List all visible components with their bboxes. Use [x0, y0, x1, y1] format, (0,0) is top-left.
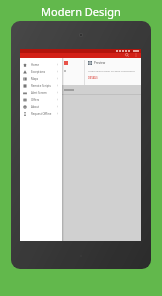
- staticText: Lorem ipsum dolor sit amet consectetur: [88, 69, 135, 72]
- button[interactable]: Maps: [20, 75, 62, 82]
- button[interactable]: Exceptions: [20, 68, 62, 75]
- staticText: Remote Scripts: [31, 84, 51, 88]
- button[interactable]: Remote Scripts: [20, 82, 62, 89]
- button[interactable]: Alert Screen: [20, 89, 62, 96]
- button[interactable]: About: [20, 103, 62, 110]
- staticText: Modern Design: [41, 4, 121, 19]
- staticText: Exceptions: [31, 70, 46, 74]
- staticText: Maps: [31, 77, 39, 81]
- staticText: DETAILS: [88, 76, 98, 79]
- button[interactable]: More options: [133, 52, 138, 57]
- staticText: Preview: [94, 61, 106, 65]
- staticText: Alert Screen: [31, 91, 47, 95]
- staticText: Offers: [31, 98, 40, 102]
- staticText: Request Offline: [31, 112, 52, 116]
- button[interactable]: DETAILS: [88, 76, 98, 79]
- staticText: Home: [31, 63, 39, 67]
- button[interactable]: Request Offline: [20, 110, 62, 117]
- button[interactable]: Search: [124, 52, 129, 57]
- button[interactable]: Offers: [20, 96, 62, 103]
- button[interactable]: Home: [20, 61, 62, 68]
- staticText: About: [31, 105, 39, 109]
